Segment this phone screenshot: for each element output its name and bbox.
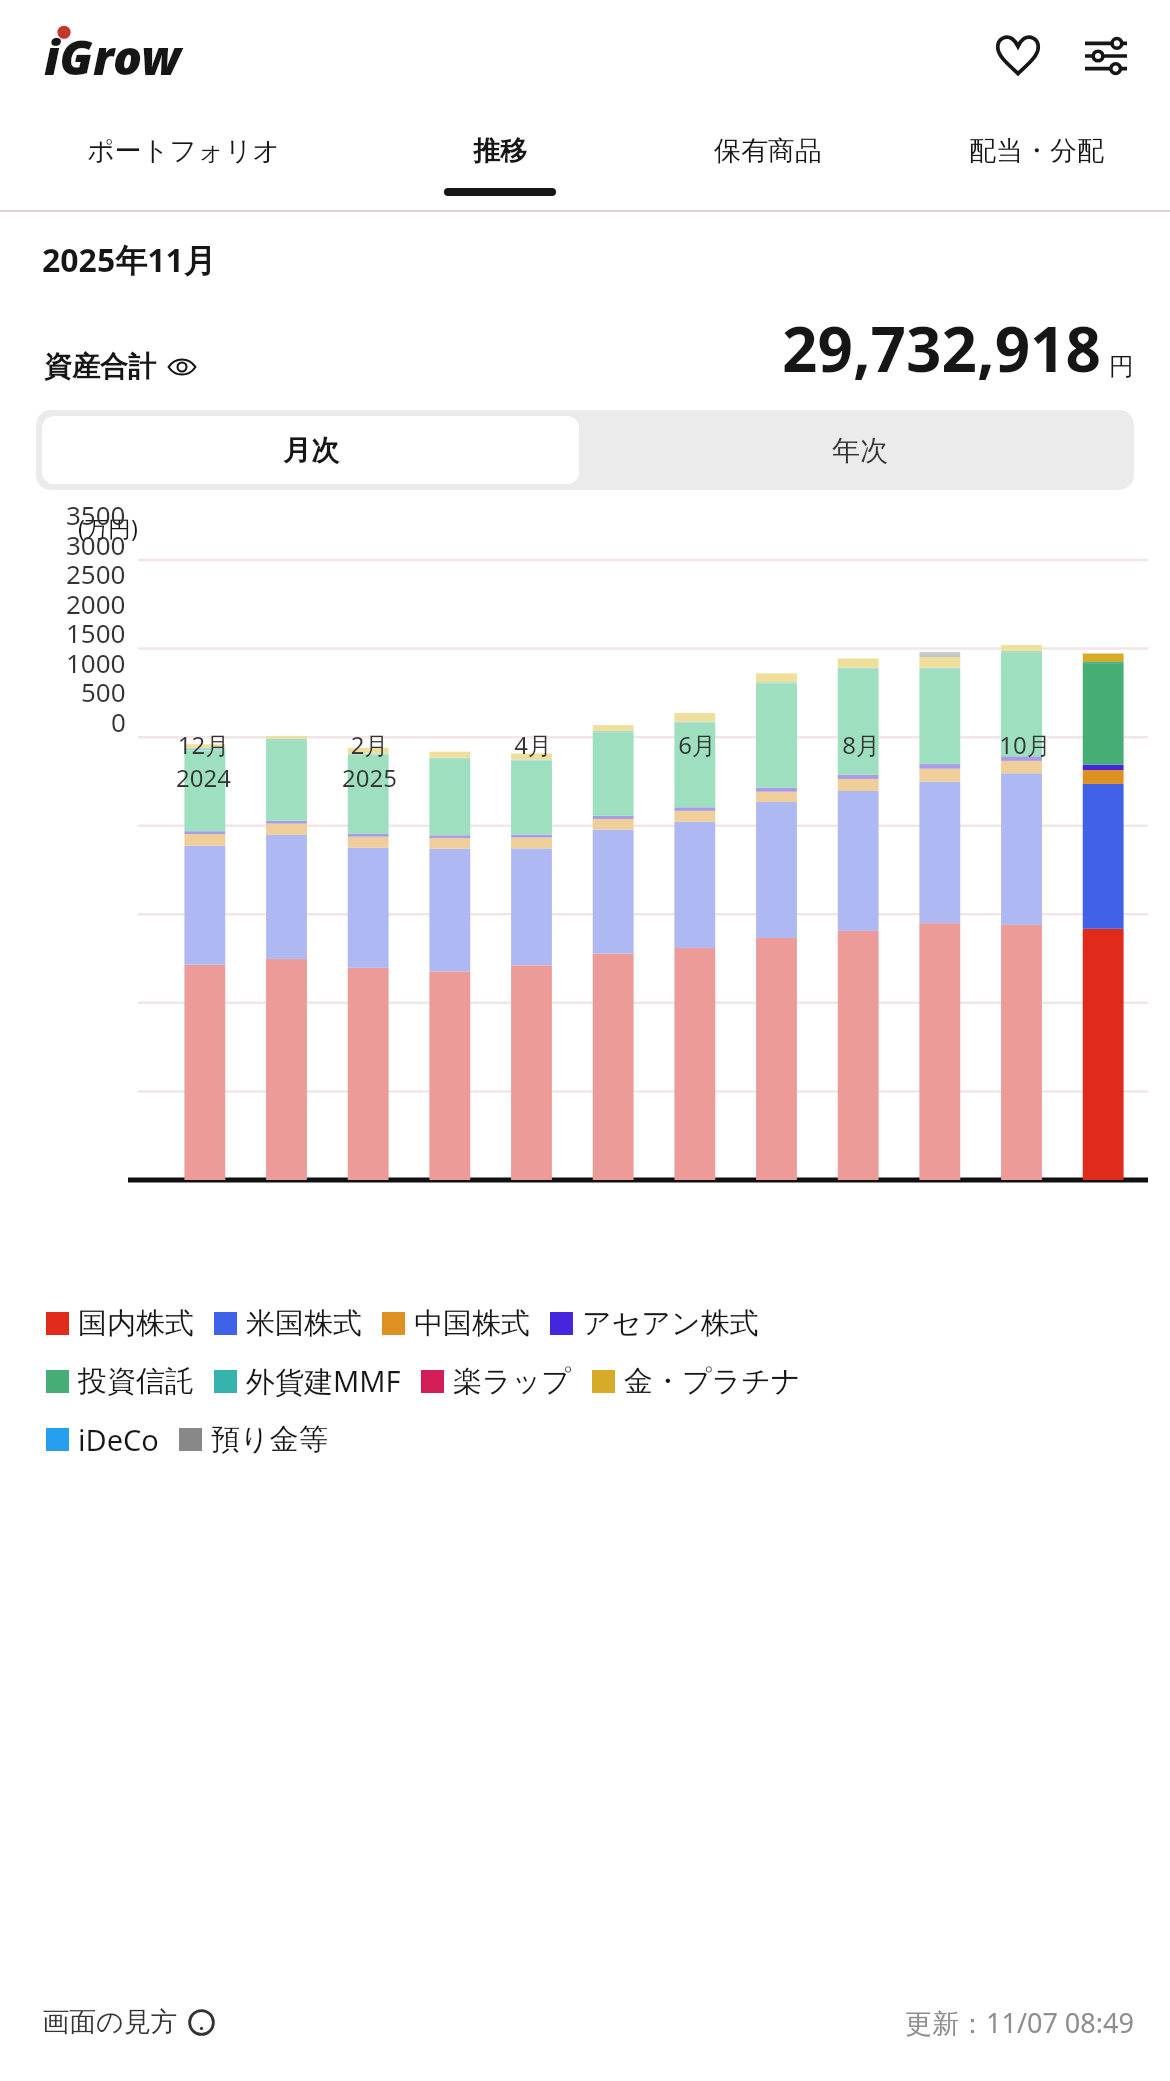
staticText: 6月 <box>678 728 716 761</box>
staticText: 4月 <box>514 728 552 761</box>
staticText: 投資信託 <box>78 1363 194 1400</box>
button[interactable]: アセアン株式 <box>550 1305 779 1342</box>
staticText: 12月 2024 <box>176 728 231 794</box>
button[interactable]: 楽ラップ <box>421 1363 592 1400</box>
staticText: 1500 <box>66 615 126 650</box>
staticText: アセアン株式 <box>582 1305 759 1342</box>
button[interactable]: 画面の見方 <box>42 1995 215 2049</box>
staticText: 2月 2025 <box>342 728 397 794</box>
staticText: 中国株式 <box>414 1305 530 1342</box>
button[interactable]: 中国株式 <box>382 1305 550 1342</box>
staticText: iDeCo <box>78 1420 159 1459</box>
staticText: 2025年11月 <box>42 238 216 282</box>
staticText: 画面の見方 <box>42 2005 178 2039</box>
staticText: 保有商品 <box>714 134 822 168</box>
staticText: 推移 <box>473 134 527 168</box>
button[interactable]: 推移 <box>366 112 634 212</box>
button[interactable]: 年次 <box>585 410 1134 490</box>
staticText: 1000 <box>66 645 126 680</box>
staticText: 2500 <box>66 556 126 591</box>
button[interactable]: 保有商品 <box>634 112 902 212</box>
staticText: 月次 <box>283 433 339 468</box>
staticText: 500 <box>81 674 126 709</box>
staticText: 3500 <box>66 497 126 532</box>
button[interactable]: Favorites <box>986 24 1050 88</box>
staticText: 金・プラチナ <box>624 1363 801 1400</box>
staticText: 年次 <box>832 433 888 468</box>
staticText: 0 <box>111 704 126 739</box>
staticText: 配当・分配 <box>969 134 1104 168</box>
staticText: 資産合計 <box>44 349 156 384</box>
staticText: 預り金等 <box>211 1421 328 1458</box>
button[interactable]: 国内株式 <box>46 1305 214 1342</box>
button[interactable]: 資産合計 <box>42 343 198 390</box>
button[interactable]: 配当・分配 <box>902 112 1170 212</box>
staticText: iGrow <box>44 24 181 89</box>
staticText: 更新：11/07 08:49 <box>905 2004 1134 2041</box>
button[interactable]: 金・プラチナ <box>592 1363 821 1400</box>
staticText: 米国株式 <box>246 1305 362 1342</box>
button[interactable]: Settings <box>1074 24 1138 88</box>
button[interactable]: 投資信託 <box>46 1363 214 1400</box>
staticText: 円 <box>1109 351 1134 382</box>
button[interactable]: ポートフォリオ <box>0 112 366 212</box>
staticText: 外貨建MMF <box>246 1361 401 1401</box>
staticText: (万円) <box>78 512 138 543</box>
staticText: 29,732,918 <box>782 306 1102 390</box>
staticText: ポートフォリオ <box>87 134 280 168</box>
button[interactable]: 預り金等 <box>179 1421 348 1458</box>
staticText: 10月 <box>999 728 1051 761</box>
staticText: 2000 <box>66 586 126 621</box>
button[interactable]: iDeCo <box>46 1420 179 1459</box>
button[interactable]: 米国株式 <box>214 1305 382 1342</box>
button[interactable]: 外貨建MMF <box>214 1361 421 1401</box>
staticText: 国内株式 <box>78 1305 194 1342</box>
staticText: 楽ラップ <box>453 1363 572 1400</box>
staticText: 3000 <box>66 527 126 562</box>
button[interactable]: 月次 <box>42 416 579 484</box>
staticText: 8月 <box>842 728 880 761</box>
